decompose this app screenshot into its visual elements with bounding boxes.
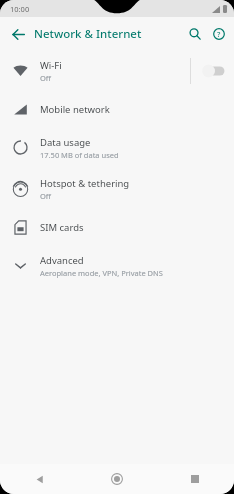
staticText: Data usage	[40, 136, 91, 149]
button[interactable]: Hotspot & tethering	[0, 168, 234, 209]
staticText: Wi-Fi	[40, 59, 62, 72]
staticText: Off	[40, 73, 52, 83]
button[interactable]: Help	[208, 21, 230, 47]
staticText: Aeroplane mode, VPN, Private DNS	[40, 268, 163, 278]
staticText: ?	[217, 29, 221, 39]
button[interactable]: Search	[182, 21, 208, 47]
staticText: Off	[40, 191, 52, 201]
staticText: Advanced	[40, 254, 84, 267]
staticText: 10:00	[10, 4, 30, 14]
button[interactable]: Mobile network	[0, 91, 234, 127]
staticText: 17.50 MB of data used	[40, 150, 119, 160]
button[interactable]: Back	[6, 22, 30, 46]
button[interactable]: Data usage	[0, 127, 234, 168]
button[interactable]: Home	[78, 464, 156, 494]
staticText: Network & Internet	[34, 26, 142, 42]
staticText: Mobile network	[40, 103, 110, 116]
staticText: SIM cards	[40, 221, 84, 234]
button[interactable]: SIM cards	[0, 209, 234, 245]
button[interactable]: Wi-Fi toggle	[200, 63, 226, 79]
staticText: Hotspot & tethering	[40, 177, 130, 190]
button[interactable]: Advanced	[0, 245, 234, 286]
button[interactable]: Recent apps	[156, 464, 234, 494]
button[interactable]: Back	[0, 464, 78, 494]
button[interactable]: Wi-Fi	[0, 50, 234, 91]
